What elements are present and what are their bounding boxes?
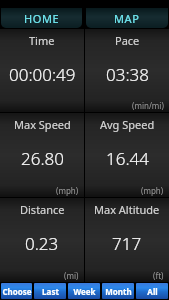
staticText: MAP (114, 11, 140, 26)
staticText: All (147, 286, 158, 297)
button[interactable]: Last (34, 283, 66, 299)
staticText: 00:00:49 (9, 63, 76, 86)
button[interactable]: Time (0, 29, 84, 112)
staticText: 717 (112, 232, 142, 255)
staticText: (ft) (153, 270, 164, 281)
staticText: Avg Speed (100, 117, 155, 132)
button[interactable]: Avg Speed (85, 113, 169, 197)
button[interactable]: Week (68, 283, 100, 299)
staticText: Distance (20, 202, 65, 217)
button[interactable]: HOME (1, 8, 82, 28)
staticText: Max Altitude (94, 202, 160, 217)
staticText: (min/mi) (132, 100, 164, 111)
staticText: Week (73, 286, 96, 297)
staticText: 03:38 (106, 63, 149, 86)
button[interactable]: MAP (86, 8, 168, 28)
button[interactable]: Pace (85, 29, 169, 112)
staticText: Pace (115, 33, 140, 48)
button[interactable]: All (136, 283, 168, 299)
staticText: Time (29, 33, 55, 48)
staticText: Last (42, 286, 59, 297)
button[interactable]: Max Altitude (85, 198, 169, 282)
staticText: HOME (24, 11, 60, 26)
staticText: (mi) (64, 270, 79, 281)
staticText: Month (105, 286, 132, 297)
staticText: Max Speed (14, 117, 71, 132)
staticText: (mph) (141, 185, 164, 196)
button[interactable]: Month (102, 283, 134, 299)
staticText: 0.23 (25, 232, 59, 255)
staticText: 16.44 (106, 147, 149, 170)
button[interactable]: Choose (1, 283, 32, 299)
staticText: 26.80 (21, 147, 64, 170)
button[interactable]: Distance (0, 198, 84, 282)
staticText: Choose (2, 286, 32, 297)
staticText: (mph) (56, 185, 79, 196)
button[interactable]: Max Speed (0, 113, 84, 197)
